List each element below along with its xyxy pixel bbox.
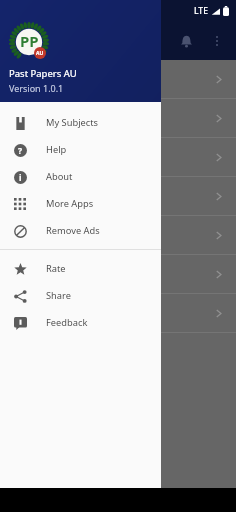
- staticText: Feedback: [46, 316, 88, 329]
- staticText: ?: [18, 145, 23, 157]
- staticText: Remove Ads: [46, 224, 100, 237]
- button[interactable]: Feedback: [0, 309, 161, 336]
- button[interactable]: Notifications: [170, 25, 202, 57]
- staticText: Past Papers AU: [9, 67, 77, 80]
- button[interactable]: Rate: [0, 255, 161, 282]
- staticText: AU: [36, 50, 44, 57]
- staticText: Rate: [46, 262, 66, 275]
- button[interactable]: More options: [202, 26, 232, 56]
- staticText: Version 1.0.1: [9, 82, 64, 94]
- button[interactable]: [0, 60, 236, 98]
- staticText: About: [46, 170, 73, 183]
- staticText: Help: [46, 143, 67, 156]
- button[interactable]: i: [0, 163, 161, 190]
- button[interactable]: Share: [0, 282, 161, 309]
- button[interactable]: [0, 99, 236, 137]
- button[interactable]: [0, 138, 236, 176]
- button[interactable]: [0, 255, 236, 293]
- staticText: My Subjects: [46, 116, 99, 129]
- button[interactable]: My Subjects: [0, 109, 161, 136]
- staticText: PP: [20, 31, 39, 51]
- button[interactable]: ?: [0, 136, 161, 163]
- button[interactable]: [0, 216, 236, 254]
- staticText: LTE: [194, 5, 208, 17]
- staticText: More Apps: [46, 197, 94, 210]
- staticText: Share: [46, 289, 71, 302]
- button[interactable]: More Apps: [0, 190, 161, 217]
- button[interactable]: [0, 294, 236, 332]
- button[interactable]: Remove Ads: [0, 217, 161, 244]
- staticText: i: [19, 172, 22, 184]
- button[interactable]: [0, 177, 236, 215]
